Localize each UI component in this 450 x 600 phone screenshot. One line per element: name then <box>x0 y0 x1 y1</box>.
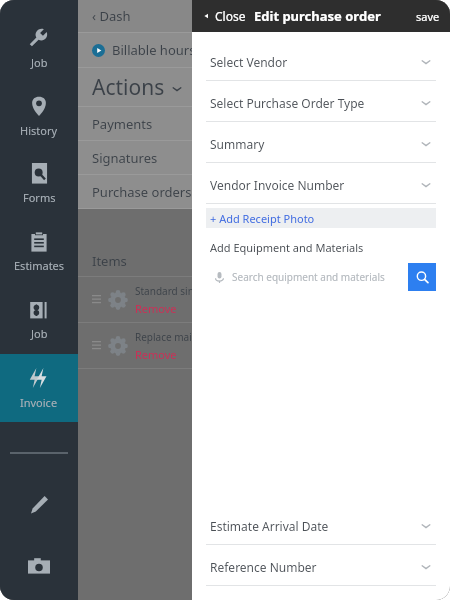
button[interactable]: Reference Number <box>192 548 450 586</box>
staticText: ‹ Dash <box>92 7 131 25</box>
button[interactable]: Forms <box>0 150 78 218</box>
button[interactable]: Search <box>408 263 436 291</box>
staticText: Payments <box>92 115 153 133</box>
staticText: Signatures <box>92 149 158 167</box>
staticText: Remove <box>135 301 177 316</box>
staticText: Select Vendor <box>210 54 420 70</box>
staticText: History <box>20 123 58 138</box>
staticText: Summary <box>210 136 420 152</box>
button[interactable]: Estimate Arrival Date <box>192 507 450 545</box>
staticText: Billable hours <box>112 41 196 59</box>
button[interactable]: Vendor Invoice Number <box>192 166 450 204</box>
button[interactable]: Job <box>0 14 78 82</box>
staticText: Edit purchase order <box>254 7 416 25</box>
staticText: Remove <box>135 347 177 362</box>
staticText: Select Purchase Order Type <box>210 95 420 111</box>
button[interactable]: Camera <box>16 544 62 590</box>
staticText: Replace main <box>135 330 198 344</box>
staticText: save <box>416 9 440 24</box>
staticText: R <box>191 301 198 316</box>
staticText: Actions <box>92 73 165 102</box>
button[interactable]: Estimates <box>0 218 78 286</box>
staticText: Job <box>31 55 48 70</box>
staticText: Close <box>215 8 246 24</box>
button[interactable]: Close <box>202 8 246 24</box>
button[interactable]: Select Purchase Order Type <box>192 84 450 122</box>
staticText: Purchase orders <box>92 183 192 201</box>
staticText: Estimates <box>14 258 65 273</box>
button[interactable]: History <box>0 82 78 150</box>
staticText: Estimate Arrival Date <box>210 518 420 534</box>
button[interactable]: Summary <box>192 125 450 163</box>
staticText: Standard sink <box>135 284 200 298</box>
button[interactable]: + Add Receipt Photo <box>206 208 436 228</box>
staticText: Job <box>31 326 48 341</box>
staticText: + Add Receipt Photo <box>210 211 315 226</box>
staticText: Forms <box>23 190 56 205</box>
button[interactable]: Invoice <box>0 354 78 422</box>
staticText: Reference Number <box>210 559 420 575</box>
button[interactable]: Job <box>0 286 78 354</box>
button[interactable]: Select Vendor <box>192 43 450 81</box>
button[interactable]: Edit <box>16 482 62 528</box>
staticText: Add Equipment and Materials <box>210 240 364 255</box>
staticText: Items <box>92 252 127 270</box>
staticText: Invoice <box>20 395 58 410</box>
staticText: Search equipment and materials <box>232 270 385 284</box>
staticText: R <box>191 347 198 362</box>
button[interactable]: Search equipment and materials <box>206 263 408 291</box>
staticText: Vendor Invoice Number <box>210 177 420 193</box>
button[interactable]: save <box>416 9 440 24</box>
